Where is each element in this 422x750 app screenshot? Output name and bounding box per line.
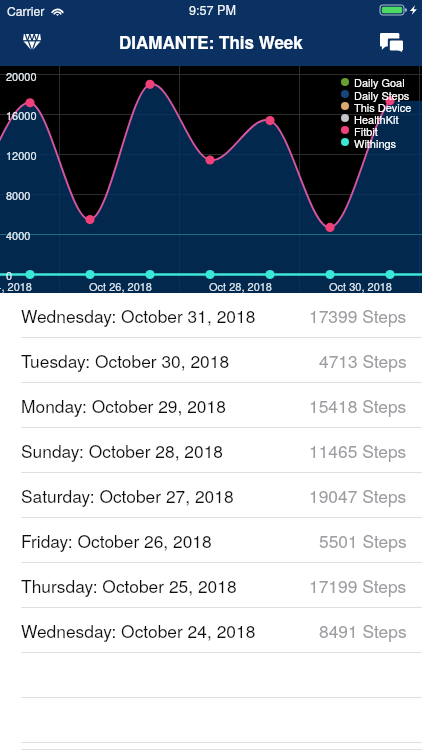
staticText: 5501 Steps: [319, 528, 407, 553]
staticText: 9:57 PM: [189, 1, 236, 19]
staticText: 19047 Steps: [309, 483, 407, 508]
staticText: Oct 24, 2018: [0, 278, 32, 294]
staticText: 17199 Steps: [309, 573, 407, 598]
staticText: Withings: [354, 135, 397, 151]
button[interactable]: Diamante: [14, 28, 50, 56]
staticText: Tuesday: October 30, 2018: [21, 348, 230, 373]
staticText: 4713 Steps: [319, 348, 407, 373]
staticText: Monday: October 29, 2018: [21, 393, 226, 418]
staticText: Wednesday: October 31, 2018: [21, 303, 256, 328]
staticText: Oct 30, 2018: [329, 278, 392, 294]
button[interactable]: Friday: October 26, 2018: [0, 518, 422, 563]
staticText: DIAMANTE: This Week: [119, 30, 303, 54]
staticText: Thursday: October 25, 2018: [21, 573, 237, 598]
staticText: 8000: [6, 187, 31, 203]
staticText: 17399 Steps: [309, 303, 407, 328]
button[interactable]: Tuesday: October 30, 2018: [0, 338, 422, 383]
button[interactable]: Monday: October 29, 2018: [0, 383, 422, 428]
button[interactable]: Sunday: October 28, 2018: [0, 428, 422, 473]
button[interactable]: Messages: [374, 28, 408, 56]
staticText: Oct 26, 2018: [89, 278, 152, 294]
staticText: HealthKit: [354, 111, 399, 127]
staticText: 4000: [6, 227, 31, 243]
staticText: Saturday: October 27, 2018: [21, 483, 234, 508]
staticText: Daily Goal: [354, 74, 405, 90]
staticText: Oct 28, 2018: [209, 278, 272, 294]
staticText: 16000: [6, 107, 37, 123]
staticText: Wednesday: October 24, 2018: [21, 618, 256, 643]
staticText: 20000: [6, 68, 37, 84]
button[interactable]: Thursday: October 25, 2018: [0, 563, 422, 608]
staticText: 11465 Steps: [309, 438, 407, 463]
staticText: Friday: October 26, 2018: [21, 528, 212, 553]
staticText: Sunday: October 28, 2018: [21, 438, 223, 463]
staticText: Fitbit: [354, 123, 378, 139]
button[interactable]: Wednesday: October 24, 2018: [0, 608, 422, 653]
staticText: Carrier: [7, 2, 45, 19]
button[interactable]: Wednesday: October 31, 2018: [0, 293, 422, 338]
staticText: This Device: [354, 99, 412, 115]
staticText: 15418 Steps: [309, 393, 407, 418]
button[interactable]: Saturday: October 27, 2018: [0, 473, 422, 518]
staticText: 0: [6, 267, 13, 283]
staticText: Daily Steps: [354, 87, 410, 103]
staticText: 8491 Steps: [319, 618, 407, 643]
staticText: 12000: [6, 147, 37, 163]
